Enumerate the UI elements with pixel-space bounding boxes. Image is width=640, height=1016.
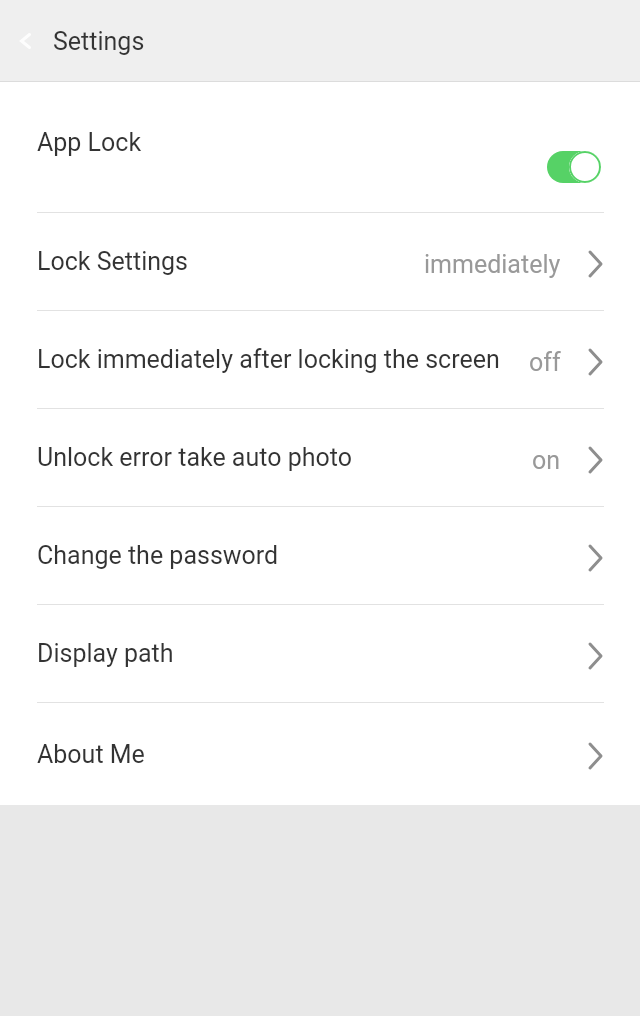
staticText: Change the password xyxy=(37,541,279,570)
staticText: on xyxy=(532,446,561,475)
staticText: App Lock xyxy=(37,128,142,157)
button[interactable] xyxy=(547,151,601,183)
staticText: off xyxy=(529,348,561,377)
staticText: Unlock error take auto photo xyxy=(37,443,352,472)
button[interactable]: About Me xyxy=(0,703,640,805)
button[interactable]: Lock Settings xyxy=(0,213,640,310)
button[interactable] xyxy=(10,26,40,56)
button[interactable]: Display path xyxy=(0,605,640,702)
button[interactable]: App Lock xyxy=(0,82,640,212)
staticText: About Me xyxy=(37,740,145,769)
button[interactable]: Lock immediately after locking the scree… xyxy=(0,311,640,408)
staticText: immediately xyxy=(424,250,561,279)
button[interactable]: Change the password xyxy=(0,507,640,604)
staticText: Lock immediately after locking the scree… xyxy=(37,345,500,374)
staticText: Lock Settings xyxy=(37,247,188,276)
staticText: Display path xyxy=(37,639,174,668)
button[interactable]: Unlock error take auto photo xyxy=(0,409,640,506)
staticText: Settings xyxy=(53,27,145,56)
